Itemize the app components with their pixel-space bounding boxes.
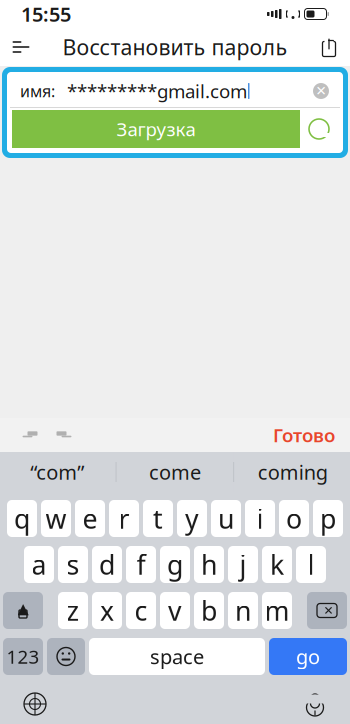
staticText: g bbox=[167, 547, 183, 582]
staticText: b bbox=[201, 593, 217, 628]
staticText: ✕ bbox=[315, 83, 326, 98]
staticText: Загрузка bbox=[116, 117, 195, 141]
staticText: go bbox=[296, 643, 320, 670]
button[interactable]: q bbox=[7, 500, 37, 537]
button[interactable]: Готово bbox=[273, 420, 350, 450]
staticText: c bbox=[134, 593, 147, 628]
button[interactable]: Назад bbox=[0, 28, 43, 66]
button[interactable]: Удалить bbox=[307, 592, 347, 629]
button[interactable]: t bbox=[143, 500, 173, 537]
button[interactable]: e bbox=[75, 500, 105, 537]
button[interactable]: j bbox=[228, 546, 258, 583]
button[interactable]: v bbox=[160, 592, 190, 629]
button[interactable]: f bbox=[126, 546, 156, 583]
button[interactable]: Диктовка bbox=[293, 687, 350, 721]
staticText: ✕ bbox=[323, 604, 333, 617]
staticText: j bbox=[239, 547, 246, 582]
staticText: s bbox=[66, 547, 79, 582]
staticText: h bbox=[201, 547, 217, 582]
button[interactable]: x bbox=[92, 592, 122, 629]
button[interactable]: s bbox=[58, 546, 88, 583]
staticText: Восстановить пароль bbox=[62, 33, 287, 61]
button[interactable]: z bbox=[58, 592, 88, 629]
button[interactable]: go bbox=[269, 638, 347, 675]
staticText: come bbox=[149, 459, 201, 485]
button[interactable]: u bbox=[211, 500, 241, 537]
button[interactable]: Загрузка bbox=[12, 110, 300, 148]
button[interactable]: Поделиться bbox=[307, 28, 350, 66]
staticText: t bbox=[153, 501, 163, 536]
staticText: w bbox=[45, 501, 66, 536]
button[interactable]: b bbox=[194, 592, 224, 629]
staticText: p bbox=[320, 501, 336, 536]
button[interactable]: o bbox=[279, 500, 309, 537]
staticText: 123 bbox=[6, 644, 39, 669]
staticText: n bbox=[235, 593, 251, 628]
staticText: 15:55 bbox=[21, 1, 71, 27]
button[interactable]: Эмодзи bbox=[47, 638, 85, 675]
button[interactable]: Очистить bbox=[312, 82, 340, 100]
button[interactable]: a bbox=[24, 546, 54, 583]
staticText: v bbox=[168, 593, 182, 628]
staticText: f bbox=[136, 547, 145, 582]
staticText: u bbox=[218, 501, 234, 536]
button[interactable]: r bbox=[109, 500, 139, 537]
staticText: z bbox=[66, 593, 79, 628]
staticText: q bbox=[14, 501, 30, 536]
button[interactable]: Shift bbox=[3, 592, 43, 629]
button[interactable]: p bbox=[313, 500, 343, 537]
staticText: space bbox=[150, 643, 204, 670]
button[interactable]: Следующее поле bbox=[47, 420, 81, 450]
staticText: Готово bbox=[273, 423, 335, 447]
button[interactable]: n bbox=[228, 592, 258, 629]
button[interactable]: w bbox=[41, 500, 71, 537]
staticText: coming bbox=[258, 459, 328, 485]
staticText: имя: bbox=[20, 80, 55, 102]
button[interactable]: m bbox=[262, 592, 292, 629]
staticText: m bbox=[264, 593, 289, 628]
staticText: d bbox=[99, 547, 115, 582]
button[interactable]: coming bbox=[234, 452, 350, 492]
staticText: e bbox=[82, 501, 97, 536]
button[interactable]: Сменить язык bbox=[0, 687, 57, 721]
staticText: a bbox=[31, 547, 46, 582]
button[interactable]: 123 bbox=[3, 638, 43, 675]
button[interactable]: h bbox=[194, 546, 224, 583]
button[interactable]: l bbox=[296, 546, 326, 583]
staticText: ▲ bbox=[17, 600, 28, 617]
button[interactable]: k bbox=[262, 546, 292, 583]
button[interactable]: come bbox=[117, 452, 233, 492]
button[interactable]: g bbox=[160, 546, 190, 583]
staticText: *********gmail.com bbox=[67, 79, 247, 103]
staticText: i bbox=[256, 501, 263, 536]
staticText: l bbox=[307, 547, 314, 582]
staticText: r bbox=[118, 501, 129, 536]
button[interactable]: c bbox=[126, 592, 156, 629]
button[interactable]: “com” bbox=[0, 452, 116, 492]
button[interactable]: i bbox=[245, 500, 275, 537]
staticText: y bbox=[185, 501, 199, 536]
staticText: o bbox=[286, 501, 302, 536]
staticText: “com” bbox=[30, 459, 84, 485]
button[interactable]: y bbox=[177, 500, 207, 537]
button[interactable]: Предыдущее поле bbox=[0, 420, 47, 450]
staticText: x bbox=[100, 593, 114, 628]
staticText: k bbox=[270, 547, 284, 582]
button[interactable]: d bbox=[92, 546, 122, 583]
button[interactable]: space bbox=[89, 638, 265, 675]
